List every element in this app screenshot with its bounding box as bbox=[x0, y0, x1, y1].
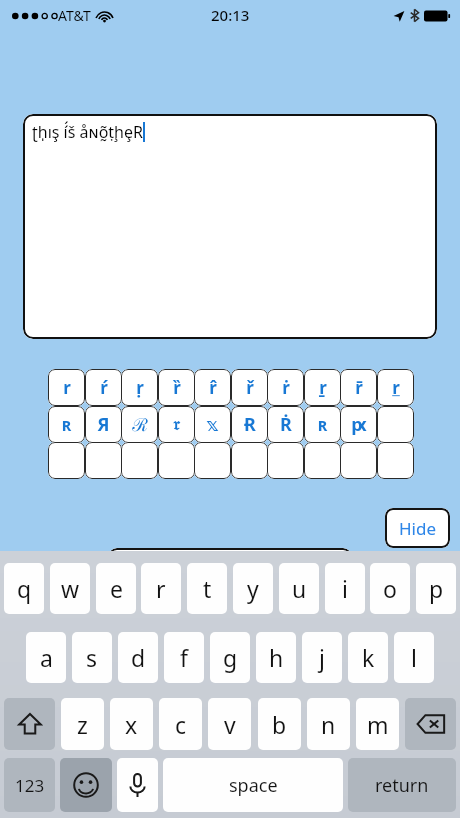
staticText: ŕ bbox=[100, 376, 108, 399]
staticText: k bbox=[362, 642, 375, 673]
button[interactable]: ʀ bbox=[48, 406, 85, 443]
staticText: ṛ bbox=[136, 376, 144, 399]
staticText: space bbox=[229, 773, 278, 798]
button[interactable]: g bbox=[210, 632, 250, 683]
staticText: ṟ bbox=[319, 376, 327, 399]
staticText: ʀ bbox=[61, 412, 72, 437]
button[interactable]: d bbox=[118, 632, 158, 683]
staticText: z bbox=[77, 709, 88, 740]
button[interactable]: w bbox=[50, 563, 90, 614]
button[interactable]: ř bbox=[231, 369, 268, 406]
staticText: ℛ bbox=[132, 412, 148, 437]
button[interactable]: f bbox=[164, 632, 204, 683]
staticText: q bbox=[17, 573, 32, 604]
button[interactable]: ṙ bbox=[267, 369, 304, 406]
button[interactable]: p bbox=[416, 563, 456, 614]
button[interactable]: m bbox=[356, 698, 399, 750]
button[interactable]: n bbox=[307, 698, 350, 750]
staticText: y bbox=[247, 573, 259, 604]
button[interactable]: v bbox=[208, 698, 251, 750]
button[interactable]: r bbox=[141, 563, 181, 614]
button[interactable]: o bbox=[370, 563, 410, 614]
button[interactable]: ṟ bbox=[304, 369, 341, 406]
staticText: g bbox=[223, 642, 238, 673]
button[interactable]: j bbox=[302, 632, 342, 683]
staticText: f bbox=[180, 642, 188, 673]
button[interactable]: 𝔯 bbox=[158, 406, 195, 443]
staticText: d bbox=[131, 642, 146, 673]
button[interactable]: y bbox=[233, 563, 273, 614]
button[interactable]: ŕ bbox=[85, 369, 122, 406]
button[interactable] bbox=[48, 442, 85, 479]
button[interactable]: r bbox=[377, 369, 414, 406]
button[interactable]: l bbox=[394, 632, 434, 683]
button[interactable]: ʈh̩ış ı́́š åɴõ̰ṭḩȩR bbox=[23, 114, 437, 339]
staticText: o bbox=[383, 573, 397, 604]
button[interactable]: q bbox=[4, 563, 44, 614]
button[interactable]: ʀ bbox=[304, 406, 341, 443]
button[interactable]: ℛ bbox=[121, 406, 158, 443]
button[interactable]: r̄ bbox=[340, 369, 377, 406]
button[interactable]: Shift bbox=[4, 698, 55, 750]
button[interactable]: space bbox=[163, 758, 343, 812]
staticText: w bbox=[61, 573, 80, 604]
staticText: ʈh̩ış ı́́š åɴõ̰ṭḩȩR bbox=[32, 121, 143, 143]
button[interactable]: Я bbox=[85, 406, 122, 443]
button[interactable] bbox=[231, 442, 268, 479]
staticText: r bbox=[63, 376, 71, 399]
button[interactable]: 123 bbox=[4, 758, 55, 812]
button[interactable]: Dictate bbox=[117, 758, 158, 812]
button[interactable]: ȑ bbox=[158, 369, 195, 406]
staticText: b bbox=[272, 709, 287, 740]
button[interactable]: r bbox=[48, 369, 85, 406]
staticText: ṙ bbox=[282, 376, 290, 399]
staticText: r bbox=[392, 376, 400, 399]
staticText: r̂ bbox=[209, 376, 217, 399]
button[interactable]: h bbox=[256, 632, 296, 683]
button[interactable] bbox=[377, 406, 414, 443]
button[interactable]: Emoji bbox=[60, 758, 112, 812]
button[interactable]: x bbox=[110, 698, 153, 750]
button[interactable]: return bbox=[348, 758, 456, 812]
button[interactable]: a bbox=[26, 632, 66, 683]
button[interactable] bbox=[377, 442, 414, 479]
button[interactable]: Ɍ bbox=[231, 406, 268, 443]
staticText: 𝕩 bbox=[206, 414, 219, 435]
staticText: u bbox=[292, 573, 307, 604]
button[interactable]: z bbox=[61, 698, 104, 750]
staticText: 𝔯 bbox=[173, 416, 180, 434]
button[interactable]: u bbox=[279, 563, 319, 614]
staticText: ԗ bbox=[351, 412, 367, 437]
button[interactable]: b bbox=[258, 698, 301, 750]
staticText: s bbox=[86, 642, 98, 673]
staticText: e bbox=[110, 573, 123, 604]
staticText: h bbox=[269, 642, 284, 673]
button[interactable]: i bbox=[325, 563, 365, 614]
button[interactable]: Hide bbox=[385, 508, 450, 548]
staticText: Ɍ bbox=[244, 412, 256, 437]
button[interactable]: r̂ bbox=[194, 369, 231, 406]
button[interactable]: Backspace bbox=[405, 698, 456, 750]
staticText: a bbox=[40, 642, 53, 673]
button[interactable] bbox=[85, 442, 122, 479]
button[interactable]: ṛ bbox=[121, 369, 158, 406]
button[interactable]: c bbox=[159, 698, 202, 750]
button[interactable]: 𝕩 bbox=[194, 406, 231, 443]
button[interactable] bbox=[158, 442, 195, 479]
staticText: ȑ bbox=[173, 376, 181, 399]
button[interactable] bbox=[340, 442, 377, 479]
staticText: i bbox=[342, 573, 348, 604]
button[interactable] bbox=[121, 442, 158, 479]
button[interactable] bbox=[267, 442, 304, 479]
button[interactable] bbox=[194, 442, 231, 479]
button[interactable]: s bbox=[72, 632, 112, 683]
staticText: Hide bbox=[399, 517, 437, 540]
button[interactable]: k bbox=[348, 632, 388, 683]
button[interactable]: e bbox=[96, 563, 136, 614]
button[interactable]: ԗ bbox=[340, 406, 377, 443]
staticText: r bbox=[156, 573, 166, 604]
button[interactable]: t bbox=[187, 563, 227, 614]
button[interactable] bbox=[304, 442, 341, 479]
button[interactable]: Ṙ bbox=[267, 406, 304, 443]
staticText: AT&T bbox=[58, 6, 91, 25]
